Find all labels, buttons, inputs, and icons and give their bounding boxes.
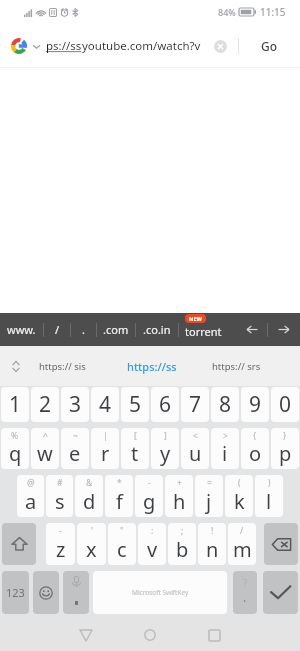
staticText: ! <box>211 525 214 537</box>
staticText: } <box>283 430 287 442</box>
staticText: ; <box>181 525 184 537</box>
staticText: 9 <box>249 390 262 419</box>
button[interactable]: Next suggestion <box>268 313 300 346</box>
button[interactable]: * <box>105 475 133 517</box>
staticText: 123 <box>6 585 25 600</box>
button[interactable]: ; <box>168 523 196 565</box>
button[interactable]: 1 <box>1 387 29 422</box>
button[interactable]: https:// sis <box>19 346 106 386</box>
button[interactable]: Expand suggestions <box>0 346 32 386</box>
staticText: # <box>57 477 63 489</box>
staticText: ] <box>164 430 167 442</box>
button[interactable]: / <box>44 313 70 346</box>
button[interactable]: ? <box>233 571 257 614</box>
button[interactable]: 123 <box>2 571 29 614</box>
staticText: y <box>160 440 171 467</box>
staticText: @ <box>27 477 35 489</box>
button[interactable]: Recent apps <box>192 619 236 651</box>
staticText: Microsoft SwiftKey <box>132 588 189 597</box>
button[interactable]: Shift <box>2 523 36 565</box>
button[interactable]: Emoji <box>33 571 59 614</box>
staticText: % <box>11 430 19 442</box>
staticText: x <box>86 536 97 563</box>
staticText: / <box>55 322 60 337</box>
button[interactable]: Microsoft SwiftKey <box>93 571 227 614</box>
button[interactable]: Voice input <box>63 571 89 614</box>
staticText: t <box>131 440 139 467</box>
button[interactable]: / <box>228 523 256 565</box>
button[interactable]: - <box>46 523 75 565</box>
button[interactable]: ! <box>198 523 226 565</box>
staticText: c <box>117 536 127 563</box>
staticText: https:// sis <box>39 360 86 373</box>
button[interactable]: Search engine <box>11 38 27 54</box>
button[interactable]: = <box>195 475 223 517</box>
button[interactable]: Clear text <box>208 34 232 58</box>
button[interactable]: www. <box>0 313 43 346</box>
staticText: q <box>9 440 22 467</box>
button[interactable]: [ <box>121 428 149 469</box>
staticText: 1 <box>9 390 22 419</box>
staticText: 2 <box>39 390 52 419</box>
button[interactable]: | <box>91 428 119 469</box>
button[interactable]: 7 <box>181 387 209 422</box>
staticText: s <box>55 488 65 515</box>
button[interactable]: 5 <box>121 387 149 422</box>
button[interactable]: 0 <box>271 387 299 422</box>
button[interactable]: ] <box>151 428 179 469</box>
staticText: 5 <box>129 390 142 419</box>
staticText: 0 <box>279 390 292 419</box>
button[interactable]: .co.in <box>136 313 178 346</box>
staticText: f <box>116 488 123 515</box>
button[interactable]: https:// srs <box>193 346 280 386</box>
staticText: 6 <box>159 390 172 419</box>
button[interactable]: < <box>181 428 209 469</box>
staticText: z <box>56 536 66 563</box>
button[interactable]: .com <box>97 313 135 346</box>
button[interactable]: ~ <box>61 428 89 469</box>
button[interactable]: { <box>241 428 269 469</box>
button[interactable]: 8 <box>211 387 239 422</box>
button[interactable]: Go <box>239 24 300 68</box>
staticText: 7 <box>189 390 202 419</box>
button[interactable]: } <box>271 428 299 469</box>
button[interactable]: ' <box>77 523 106 565</box>
button[interactable]: 6 <box>151 387 179 422</box>
button[interactable]: 9 <box>241 387 269 422</box>
staticText: www. <box>7 322 36 337</box>
button[interactable]: ( <box>225 475 253 517</box>
button[interactable]: 2 <box>31 387 59 422</box>
button[interactable]: ) <box>255 475 283 517</box>
button[interactable]: https://ss <box>108 346 195 386</box>
staticText: . <box>82 322 85 337</box>
button[interactable]: & <box>75 475 103 517</box>
button[interactable]: ^ <box>31 428 59 469</box>
staticText: ps://ss <box>46 38 82 54</box>
button[interactable]: torrent <box>179 313 236 346</box>
staticText: j <box>206 488 212 515</box>
button[interactable]: 4 <box>91 387 119 422</box>
staticText: " <box>120 525 124 537</box>
staticText: ( <box>238 477 241 489</box>
button[interactable]: . <box>71 313 96 346</box>
button[interactable]: Home <box>128 619 172 651</box>
button[interactable]: # <box>46 475 73 517</box>
button[interactable]: - <box>135 475 163 517</box>
button[interactable]: @ <box>17 475 44 517</box>
button[interactable]: Backspace <box>264 523 298 565</box>
staticText: https:// srs <box>212 360 261 373</box>
button[interactable]: " <box>108 523 136 565</box>
button[interactable]: Back <box>64 619 108 651</box>
staticText: g <box>143 488 156 515</box>
staticText: 84% <box>218 6 236 18</box>
staticText: ) <box>268 477 271 489</box>
button[interactable]: > <box>211 428 239 469</box>
button[interactable]: Previous suggestion <box>236 313 267 346</box>
button[interactable]: 3 <box>61 387 89 422</box>
staticText: 4 <box>99 390 112 419</box>
staticText: https://ss <box>127 359 177 374</box>
button[interactable]: : <box>138 523 166 565</box>
button[interactable]: % <box>1 428 29 469</box>
button[interactable]: + <box>165 475 193 517</box>
button[interactable]: Enter <box>263 571 298 614</box>
